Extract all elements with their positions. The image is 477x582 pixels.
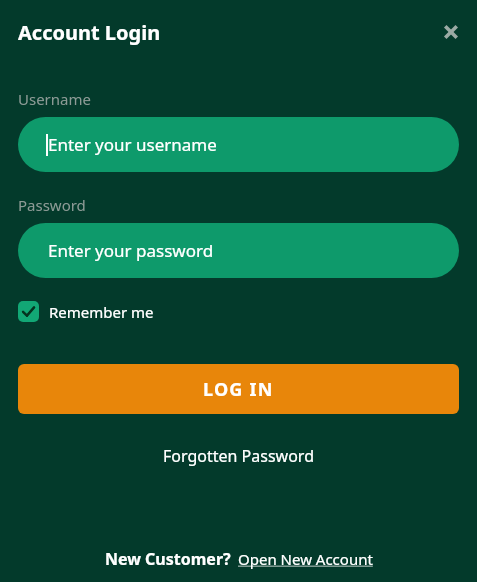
staticText: Forgotten Password <box>163 445 314 467</box>
button[interactable]: LOG IN <box>18 364 459 414</box>
button[interactable]: Enter your username <box>18 117 459 172</box>
staticText: Enter your username <box>48 133 217 156</box>
button[interactable]: Close <box>433 14 469 50</box>
staticText: New Customer? <box>105 548 231 570</box>
staticText: Enter your password <box>48 239 214 262</box>
staticText: Remember me <box>49 302 154 322</box>
button[interactable]: Open New Account <box>238 549 373 569</box>
staticText: Password <box>18 195 86 215</box>
button[interactable]: Remember me <box>18 301 154 322</box>
staticText: Username <box>18 89 91 109</box>
staticText: Account Login <box>18 19 161 46</box>
staticText: Open New Account <box>238 549 373 569</box>
button[interactable]: Forgotten Password <box>18 445 459 467</box>
button[interactable]: Enter your password <box>18 223 459 278</box>
staticText: LOG IN <box>203 377 274 402</box>
